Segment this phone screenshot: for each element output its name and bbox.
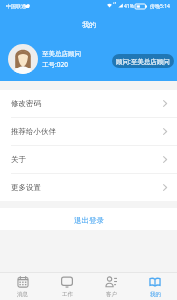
staticText: 41%: [124, 3, 134, 10]
button[interactable]: 工作: [45, 273, 89, 300]
button[interactable]: 退出登录: [0, 208, 177, 230]
staticText: 我的: [82, 20, 96, 29]
staticText: 工作: [62, 291, 73, 298]
staticText: 推荐给小伙伴: [11, 127, 56, 136]
button[interactable]: 推荐给小伙伴: [0, 118, 177, 145]
staticText: 修改密码: [11, 99, 41, 108]
staticText: 傍晚5:14: [150, 3, 170, 10]
staticText: 关于: [11, 155, 26, 164]
staticText: 顾问:至美总店顾问: [116, 57, 170, 66]
staticText: 客户: [106, 291, 117, 298]
button[interactable]: 顾问:至美总店顾问: [112, 54, 174, 68]
staticText: 我的: [150, 291, 161, 298]
button[interactable]: 修改密码: [0, 90, 177, 117]
button[interactable]: 更多设置: [0, 174, 177, 201]
staticText: 工号:020: [42, 60, 68, 69]
staticText: 消息: [17, 291, 28, 298]
button[interactable]: 消息: [0, 273, 45, 300]
button[interactable]: 客户: [89, 273, 133, 300]
button[interactable]: 我的: [133, 273, 177, 300]
staticText: 至美总店顾问: [42, 50, 81, 58]
staticText: 退出登录: [74, 216, 104, 225]
staticText: 中国联通: [6, 3, 26, 9]
staticText: 更多设置: [11, 183, 41, 192]
button[interactable]: 关于: [0, 146, 177, 173]
